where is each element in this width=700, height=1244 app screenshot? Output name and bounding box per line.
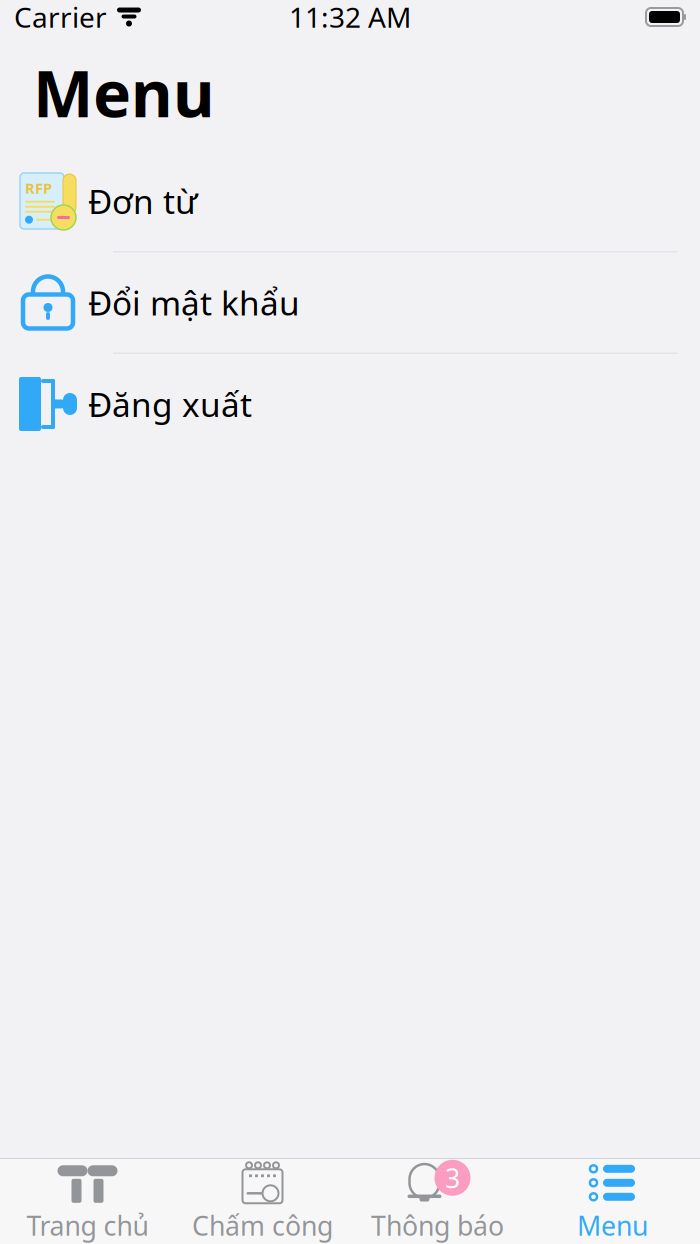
- button[interactable]: Trang chủ: [0, 1159, 175, 1244]
- staticText: 11:32 AM: [289, 0, 411, 36]
- button[interactable]: RFP: [0, 151, 700, 251]
- staticText: RFP: [25, 178, 52, 198]
- staticText: Đơn từ: [88, 179, 197, 223]
- button[interactable]: Đăng xuất: [0, 354, 700, 454]
- button[interactable]: Menu: [525, 1159, 700, 1244]
- staticText: Carrier: [14, 0, 107, 36]
- staticText: Thông báo: [371, 1208, 504, 1243]
- staticText: Đăng xuất: [88, 382, 252, 426]
- button[interactable]: Chấm công: [175, 1159, 350, 1244]
- staticText: Menu: [33, 50, 215, 135]
- staticText: Menu: [577, 1208, 648, 1243]
- staticText: 3: [445, 1160, 460, 1195]
- button[interactable]: Đổi mật khẩu: [0, 252, 700, 352]
- staticText: Chấm công: [192, 1208, 333, 1243]
- staticText: Trang chủ: [26, 1208, 148, 1243]
- button[interactable]: 3: [350, 1159, 525, 1244]
- staticText: Đổi mật khẩu: [88, 280, 300, 325]
